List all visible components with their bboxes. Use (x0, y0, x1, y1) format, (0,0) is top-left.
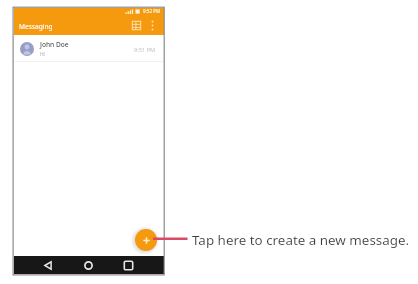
staticText: Hi (40, 51, 45, 58)
button[interactable]: More options (146, 14, 159, 35)
button[interactable]: New message (135, 229, 157, 251)
staticText: 9:51 PM (134, 46, 156, 54)
staticText: Messaging (19, 22, 53, 31)
button[interactable]: Back (38, 256, 58, 274)
button[interactable]: Contacts (126, 14, 146, 35)
staticText: Tap here to create a new message. (192, 231, 410, 249)
button[interactable]: John Doe (14, 35, 164, 61)
button[interactable]: Recent apps (118, 256, 138, 274)
staticText: 9:52 PM (143, 8, 161, 14)
button[interactable]: Home (78, 256, 98, 274)
staticText: John Doe (40, 40, 69, 49)
